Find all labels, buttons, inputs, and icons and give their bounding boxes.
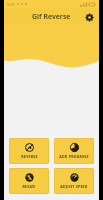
button[interactable]: ADD PROGRESS	[54, 138, 94, 164]
staticText: RESIZE	[22, 184, 36, 189]
staticText: ADJUST SPEED	[60, 184, 88, 189]
button[interactable]: Settings	[82, 10, 96, 24]
button[interactable]: ADJUST SPEED	[54, 168, 94, 194]
staticText: Gif Reverse	[32, 12, 71, 22]
staticText: 9:41	[7, 2, 15, 7]
button[interactable]: REVERSE	[9, 138, 49, 164]
button[interactable]: RESIZE	[9, 168, 49, 194]
staticText: REVERSE	[21, 154, 38, 159]
staticText: ADD PROGRESS	[59, 154, 89, 159]
